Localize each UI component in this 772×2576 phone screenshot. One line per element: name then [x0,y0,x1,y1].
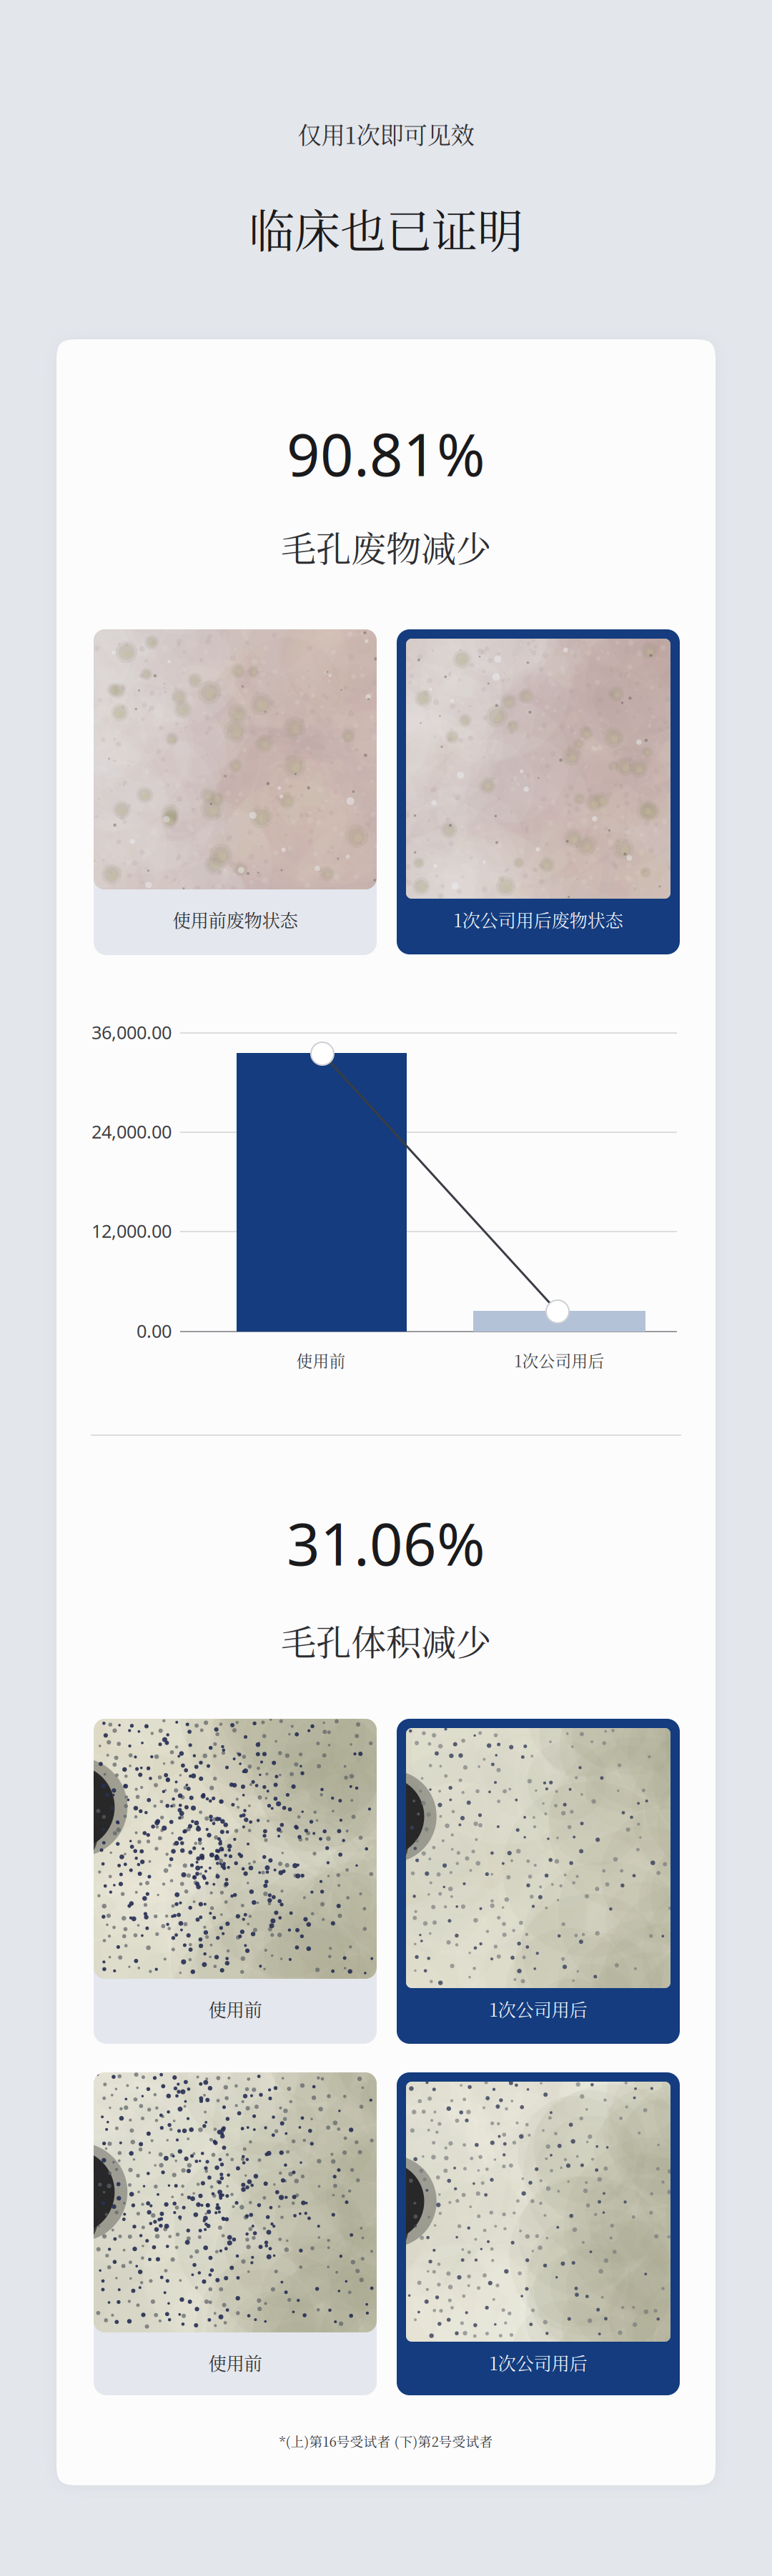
staticText: 使用前 [208,1996,262,2022]
staticText: 1次公司用后废物状态 [454,906,623,932]
staticText: *(上)第16号受试者 (下)第2号受试者 [279,2431,493,2451]
staticText: 0.00 [137,1319,172,1343]
staticText: 1次公司用后 [514,1349,604,1372]
staticText: 12,000.00 [91,1219,172,1243]
staticText: 毛孔体积减少 [281,1615,491,1666]
staticText: 1次公司用后 [489,2349,587,2375]
staticText: 仅用1次即可见效 [298,117,474,151]
staticText: 使用前 [208,2349,262,2375]
staticText: 36,000.00 [91,1020,172,1044]
staticText: 1次公司用后 [489,1996,587,2022]
staticText: 毛孔废物减少 [281,521,491,572]
staticText: 31.06% [287,1504,485,1582]
staticText: 临床也已证明 [249,195,523,261]
staticText: 使用前 [296,1349,346,1372]
staticText: 24,000.00 [91,1120,172,1144]
staticText: 90.81% [287,415,485,492]
staticText: 使用前废物状态 [173,906,298,932]
